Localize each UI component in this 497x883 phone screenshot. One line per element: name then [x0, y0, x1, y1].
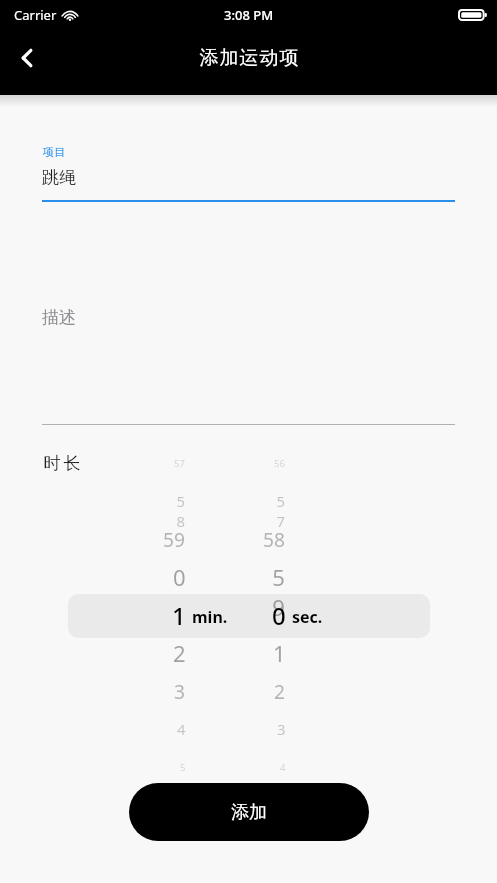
staticText: 3	[174, 678, 185, 704]
staticText: 58	[263, 526, 285, 552]
staticText: 项目	[42, 145, 66, 159]
staticText: 56	[274, 457, 285, 470]
staticText: 0	[173, 562, 185, 592]
staticText: 1	[172, 599, 185, 632]
staticText: 时长	[42, 453, 82, 474]
staticText: 57	[268, 491, 285, 531]
staticText: 4	[177, 719, 185, 739]
button[interactable]: Back	[6, 36, 50, 80]
staticText: 58	[168, 491, 185, 531]
staticText: Carrier	[14, 6, 57, 24]
staticText: 59	[260, 562, 285, 622]
staticText: 描述	[42, 307, 76, 328]
staticText: 跳绳	[42, 167, 76, 188]
button[interactable]: 添加	[129, 783, 369, 841]
staticText: 3	[277, 719, 285, 739]
staticText: min.	[192, 606, 228, 628]
staticText: 57	[174, 457, 185, 470]
staticText: 0	[272, 599, 285, 632]
staticText: 4	[280, 761, 285, 774]
staticText: 59	[163, 526, 185, 552]
staticText: 2	[274, 678, 285, 704]
staticText: 添加运动项	[199, 46, 299, 70]
staticText: 1	[273, 638, 285, 668]
staticText: 2	[173, 638, 185, 668]
staticText: sec.	[292, 606, 323, 628]
staticText: 5	[180, 761, 185, 774]
staticText: 添加	[231, 801, 267, 824]
button[interactable]: 57	[0, 500, 497, 728]
staticText: 3:08 PM	[224, 6, 274, 24]
